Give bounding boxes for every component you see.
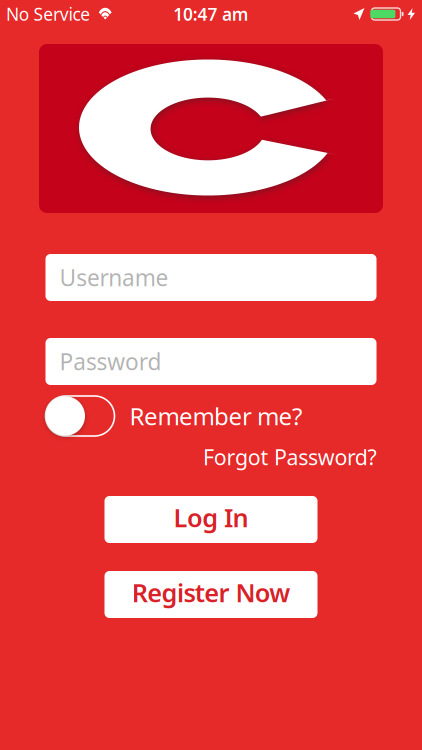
button[interactable] xyxy=(45,396,114,436)
staticText: Password xyxy=(59,346,161,376)
button[interactable]: Log In xyxy=(104,496,317,543)
staticText: Register Now xyxy=(132,576,290,609)
staticText: 10:47 am xyxy=(173,2,249,25)
staticText: No Service xyxy=(6,2,90,25)
staticText: Username xyxy=(59,262,168,292)
staticText: Forgot Password? xyxy=(203,443,376,471)
staticText: Remember me? xyxy=(129,400,302,432)
button[interactable]: Forgot Password? xyxy=(203,442,376,472)
button[interactable]: Register Now xyxy=(104,571,317,618)
staticText: Log In xyxy=(173,501,248,534)
